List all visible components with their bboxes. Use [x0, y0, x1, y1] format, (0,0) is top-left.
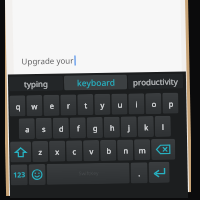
button[interactable]: j	[121, 116, 137, 138]
staticText: k	[144, 122, 149, 132]
staticText: typing	[24, 78, 48, 89]
staticText: w	[31, 101, 37, 111]
button[interactable]: Emoji	[28, 164, 46, 185]
staticText: l	[162, 122, 164, 132]
staticText: u	[117, 100, 122, 110]
button[interactable]: t	[77, 94, 94, 115]
staticText: c	[72, 146, 76, 156]
staticText: productivity	[133, 76, 178, 87]
button[interactable]: y	[94, 94, 111, 115]
button[interactable]: Space	[46, 162, 130, 185]
button[interactable]: 123	[10, 164, 28, 185]
button[interactable]: typing	[9, 76, 63, 91]
button[interactable]: Return	[148, 162, 170, 183]
staticText: n	[123, 145, 128, 156]
button[interactable]: p	[162, 93, 179, 114]
staticText: x	[55, 147, 59, 157]
staticText: 123	[13, 170, 26, 180]
staticText: q	[15, 101, 20, 111]
button[interactable]: v	[83, 140, 99, 161]
button[interactable]: Shift	[10, 141, 31, 163]
staticText: y	[100, 100, 104, 110]
button[interactable]: q	[9, 95, 26, 117]
staticText: o	[151, 99, 156, 109]
button[interactable]: w	[26, 95, 43, 116]
button[interactable]: keyboard	[64, 74, 127, 91]
staticText: a	[25, 124, 30, 134]
staticText: s	[42, 124, 46, 134]
button[interactable]: k	[138, 116, 154, 137]
staticText: j	[128, 122, 130, 132]
button[interactable]: productivity	[128, 73, 183, 89]
button[interactable]: r	[60, 94, 77, 116]
button[interactable]: Delete	[151, 139, 175, 160]
button[interactable]: d	[53, 117, 69, 139]
staticText: .	[137, 168, 141, 178]
button[interactable]: h	[104, 117, 120, 138]
staticText: d	[59, 124, 64, 134]
staticText: SwiftKey	[79, 170, 99, 177]
staticText: i	[135, 99, 137, 109]
staticText: r	[66, 100, 70, 111]
button[interactable]: e	[43, 95, 60, 116]
button[interactable]: i	[128, 93, 145, 114]
staticText: b	[106, 146, 111, 156]
button[interactable]: u	[111, 93, 128, 115]
button[interactable]: l	[155, 116, 171, 137]
staticText: t	[84, 100, 87, 110]
button[interactable]: a	[19, 118, 35, 139]
button[interactable]: z	[32, 141, 48, 162]
staticText: e	[49, 101, 54, 111]
staticText: m	[138, 145, 146, 155]
button[interactable]: s	[36, 118, 52, 139]
button[interactable]: g	[87, 117, 103, 138]
staticText: h	[110, 123, 115, 133]
button[interactable]: c	[66, 140, 82, 162]
staticText: p	[168, 99, 173, 109]
staticText: g	[93, 123, 98, 133]
button[interactable]: x	[49, 141, 65, 162]
staticText: Upgrade your	[21, 54, 74, 67]
button[interactable]: f	[70, 117, 86, 138]
staticText: z	[38, 147, 42, 157]
staticText: v	[89, 146, 93, 156]
button[interactable]: m	[134, 139, 150, 160]
button[interactable]: o	[145, 93, 162, 114]
button[interactable]: n	[117, 139, 133, 161]
button[interactable]: .	[130, 162, 148, 183]
button[interactable]: b	[100, 140, 116, 161]
staticText: keyboard	[77, 77, 115, 89]
staticText: f	[77, 123, 80, 133]
